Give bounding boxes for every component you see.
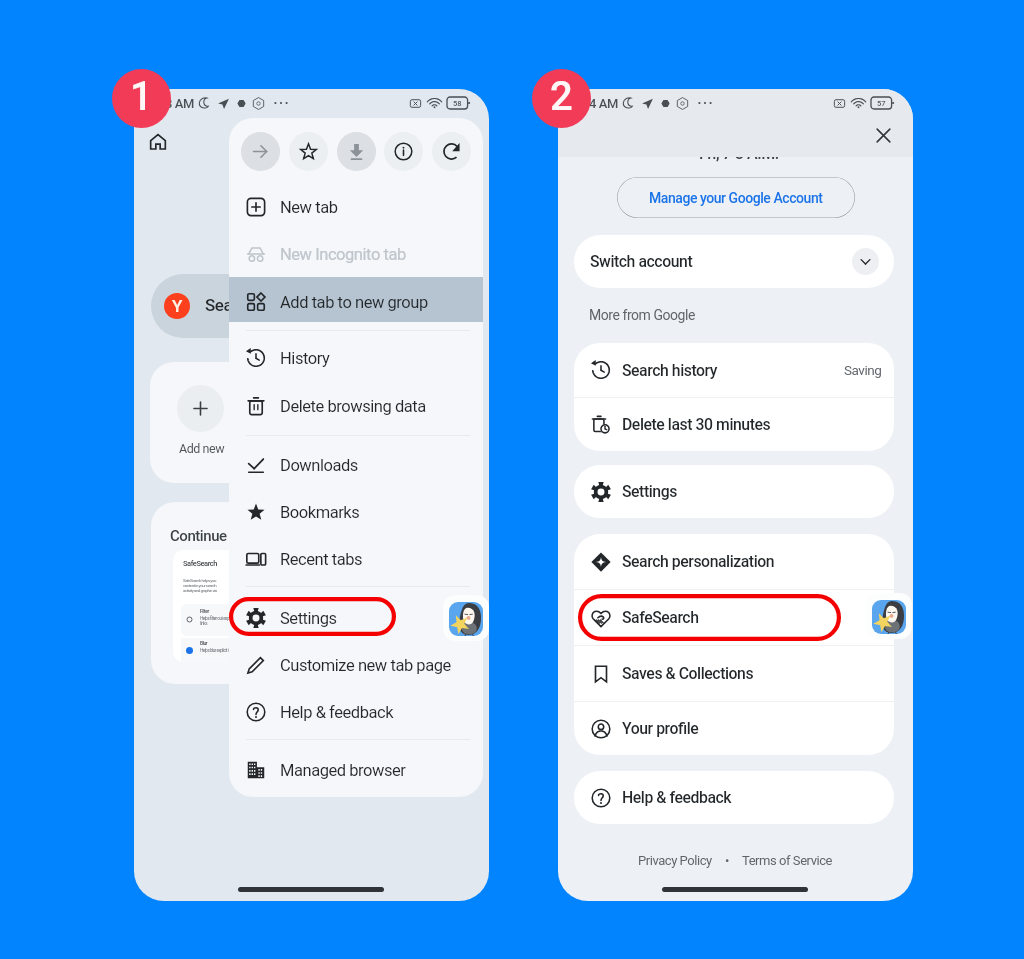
staticText: Search history	[622, 361, 718, 380]
button[interactable]: Your profile	[574, 702, 894, 755]
button[interactable]: Customize new tab page	[229, 642, 483, 688]
staticText: More from Google	[589, 307, 695, 323]
staticText: Search personalization	[622, 552, 775, 571]
button[interactable]: Bookmarks	[229, 489, 483, 535]
staticText: Helps blur explicit i	[200, 648, 229, 653]
staticText: Delete browsing data	[280, 397, 426, 416]
staticText: 58	[453, 99, 462, 108]
staticText: 8 AM	[165, 96, 194, 111]
staticText: Terms of Service	[742, 853, 833, 868]
staticText: History	[280, 349, 330, 368]
staticText: Saving	[844, 362, 882, 378]
staticText: SafeSearch helps you content in your sea…	[183, 578, 217, 593]
staticText: Customize new tab page	[280, 656, 451, 675]
button[interactable]: Reload	[432, 132, 471, 171]
staticText: Helps filter out expl links	[200, 616, 230, 626]
button[interactable]: Home	[148, 132, 168, 152]
button[interactable]: Recent tabs	[229, 536, 483, 582]
staticText: SafeSearch	[622, 608, 699, 627]
staticText: Bookmarks	[280, 503, 360, 522]
staticText: 2	[550, 73, 573, 120]
staticText: Continue	[170, 527, 227, 545]
button[interactable]: Continue	[151, 502, 266, 684]
button[interactable]: New tab	[229, 184, 483, 230]
staticText: Add new	[179, 441, 225, 456]
button[interactable]: Page info	[384, 132, 423, 171]
button[interactable]: History	[229, 335, 483, 381]
staticText: Switch account	[590, 252, 693, 271]
staticText: Delete last 30 minutes	[622, 415, 771, 434]
button[interactable]: Downloads	[229, 442, 483, 488]
staticText: New tab	[280, 198, 338, 217]
button[interactable]: Bookmark	[289, 132, 328, 171]
staticText: Manage your Google Account	[649, 190, 823, 206]
button[interactable]: Help & feedback	[229, 689, 483, 735]
button[interactable]: SafeSearch	[574, 590, 894, 645]
staticText: Privacy Policy	[638, 853, 712, 868]
button[interactable]: Add tab to new group	[229, 279, 483, 325]
staticText: Settings	[280, 609, 337, 628]
button[interactable]: Manage your Google Account	[617, 177, 855, 218]
staticText: Blur	[200, 640, 208, 646]
staticText: Recent tabs	[280, 550, 363, 569]
button[interactable]: Search personalization	[574, 534, 894, 589]
staticText: •	[725, 853, 729, 868]
staticText: Y	[172, 296, 182, 316]
button[interactable]: Managed browser	[229, 747, 483, 793]
staticText: 57	[877, 99, 886, 108]
staticText: Help & feedback	[622, 788, 732, 807]
staticText: Filter	[200, 608, 209, 614]
button[interactable]: New Incognito tab	[229, 231, 483, 277]
staticText: Saves & Collections	[622, 664, 754, 683]
button[interactable]: Search history	[574, 343, 894, 397]
button[interactable]: Help & feedback	[574, 771, 894, 824]
staticText: Your profile	[622, 719, 699, 738]
staticText: Managed browser	[280, 761, 406, 780]
staticText: Help & feedback	[280, 703, 394, 722]
button[interactable]: Settings	[574, 465, 894, 518]
button[interactable]: Settings	[229, 595, 483, 641]
button[interactable]: Download	[337, 132, 376, 171]
button[interactable]: Y	[151, 274, 331, 338]
button[interactable]: Switch account	[574, 235, 894, 288]
staticText: 1	[130, 73, 153, 120]
staticText: New Incognito tab	[280, 245, 406, 264]
staticText: Downloads	[280, 456, 358, 475]
button[interactable]: Delete last 30 minutes	[574, 398, 894, 451]
staticText: Add tab to new group	[280, 293, 428, 312]
button[interactable]: Forward	[241, 132, 280, 171]
button[interactable]: Add new	[150, 362, 252, 483]
staticText: SafeSearch	[183, 559, 217, 568]
staticText: Sea	[205, 295, 233, 315]
staticText: Settings	[622, 482, 677, 501]
button[interactable]: Close	[870, 122, 897, 149]
staticText: Fri, 7 8 A.M.	[699, 144, 779, 163]
button[interactable]: Saves & Collections	[574, 646, 894, 701]
staticText: 4 AM	[589, 96, 618, 111]
button[interactable]: Delete browsing data	[229, 383, 483, 429]
